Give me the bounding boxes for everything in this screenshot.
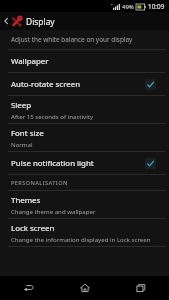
button[interactable]: Back — [0, 276, 57, 300]
staticText: PERSONALISATION — [11, 179, 68, 187]
staticText: Font size — [11, 128, 44, 139]
button[interactable]: Pulse notification light — [0, 152, 169, 174]
staticText: Change the information displayed in Lock… — [11, 235, 151, 243]
button[interactable]: Home — [57, 276, 113, 300]
button[interactable]: Up, Display settings — [0, 12, 169, 30]
staticText: Pulse notification light — [11, 158, 94, 169]
button[interactable]: Sleep — [0, 96, 169, 123]
staticText: Display — [26, 16, 55, 27]
staticText: 10:09 — [148, 2, 165, 11]
staticText: Auto-rotate screen — [11, 79, 81, 90]
button[interactable]: Wallpaper — [0, 50, 169, 72]
button[interactable]: Adjust the white balance on your display — [0, 30, 169, 49]
button[interactable]: Recent apps — [113, 276, 169, 300]
button[interactable]: Lock screen — [0, 219, 169, 246]
staticText: After 15 seconds of inactivity — [11, 112, 94, 120]
staticText: Adjust the white balance on your display — [11, 35, 133, 44]
staticText: Normal — [11, 140, 33, 148]
button[interactable]: Auto-rotate screen — [0, 73, 169, 95]
staticText: Change theme and wallpaper — [11, 207, 96, 215]
staticText: Themes — [11, 195, 41, 206]
staticText: Lock screen — [11, 223, 55, 234]
staticText: Wallpaper — [11, 56, 49, 67]
staticText: 49% — [122, 3, 134, 11]
button[interactable]: Themes — [0, 191, 169, 218]
staticText: Sleep — [11, 100, 32, 111]
button[interactable]: Font size — [0, 124, 169, 151]
